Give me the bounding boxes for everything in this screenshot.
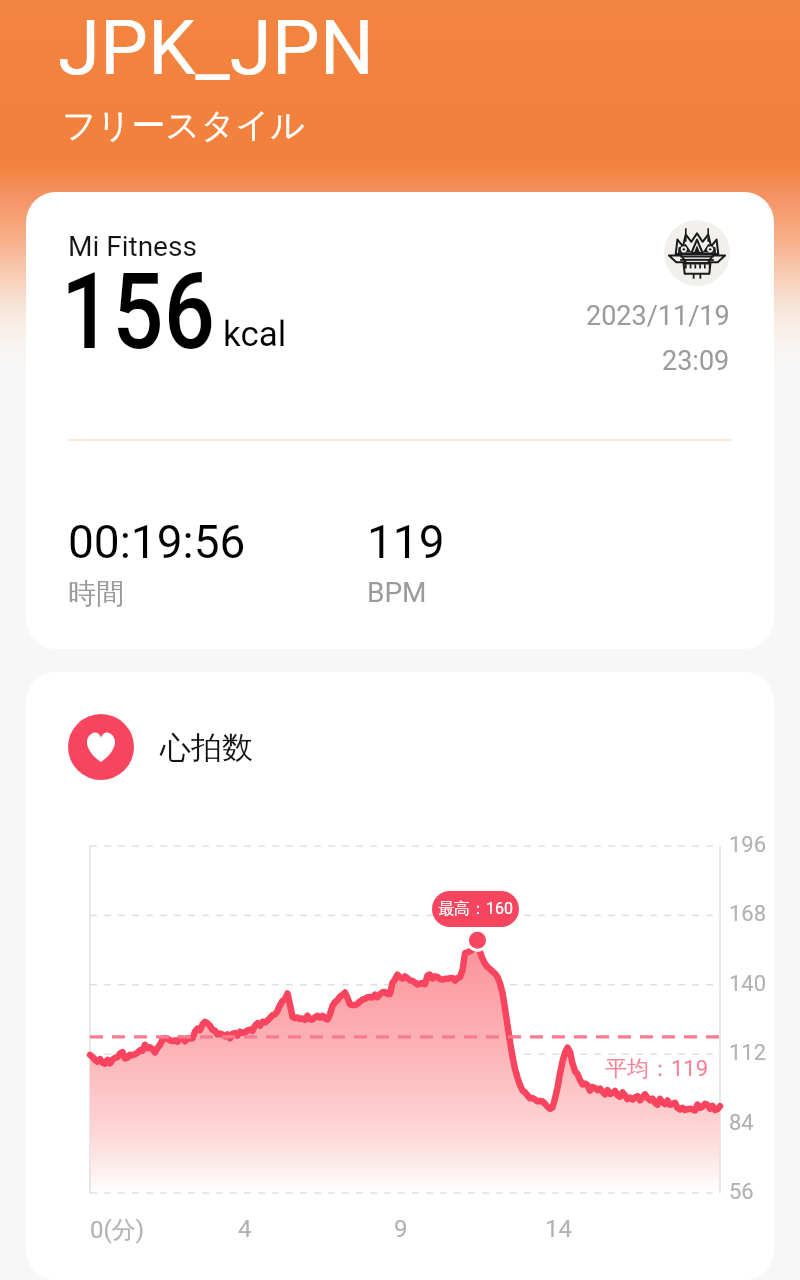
staticText: 140: [729, 971, 767, 997]
staticText: BPM: [367, 576, 427, 609]
staticText: 56: [729, 1179, 754, 1205]
staticText: 196: [729, 832, 767, 858]
staticText: 時間: [68, 576, 124, 611]
button[interactable]: Profile avatar: [664, 220, 730, 286]
staticText: 心拍数: [160, 728, 253, 767]
staticText: 23:09: [662, 345, 730, 377]
staticText: 9: [394, 1215, 408, 1243]
staticText: 4: [238, 1215, 252, 1243]
staticText: kcal: [223, 314, 287, 355]
staticText: 168: [729, 901, 767, 927]
staticText: 112: [729, 1040, 767, 1066]
other: Heart rate: [68, 714, 134, 780]
button[interactable]: Heart rate: [26, 672, 774, 1280]
staticText: 最高：160: [438, 899, 513, 919]
button[interactable]: Profile avatar: [26, 192, 774, 649]
staticText: 0(分): [90, 1215, 145, 1245]
staticText: 156: [61, 251, 216, 355]
staticText: Mi Fitness: [68, 230, 197, 263]
staticText: フリースタイル: [62, 104, 305, 147]
staticText: 平均：119: [605, 1055, 709, 1083]
staticText: 14: [545, 1215, 572, 1243]
staticText: 84: [729, 1110, 754, 1136]
staticText: 00:19:56: [68, 515, 246, 569]
staticText: JPK_JPN: [58, 3, 374, 92]
staticText: 2023/11/19: [586, 300, 730, 332]
staticText: 119: [367, 515, 445, 569]
